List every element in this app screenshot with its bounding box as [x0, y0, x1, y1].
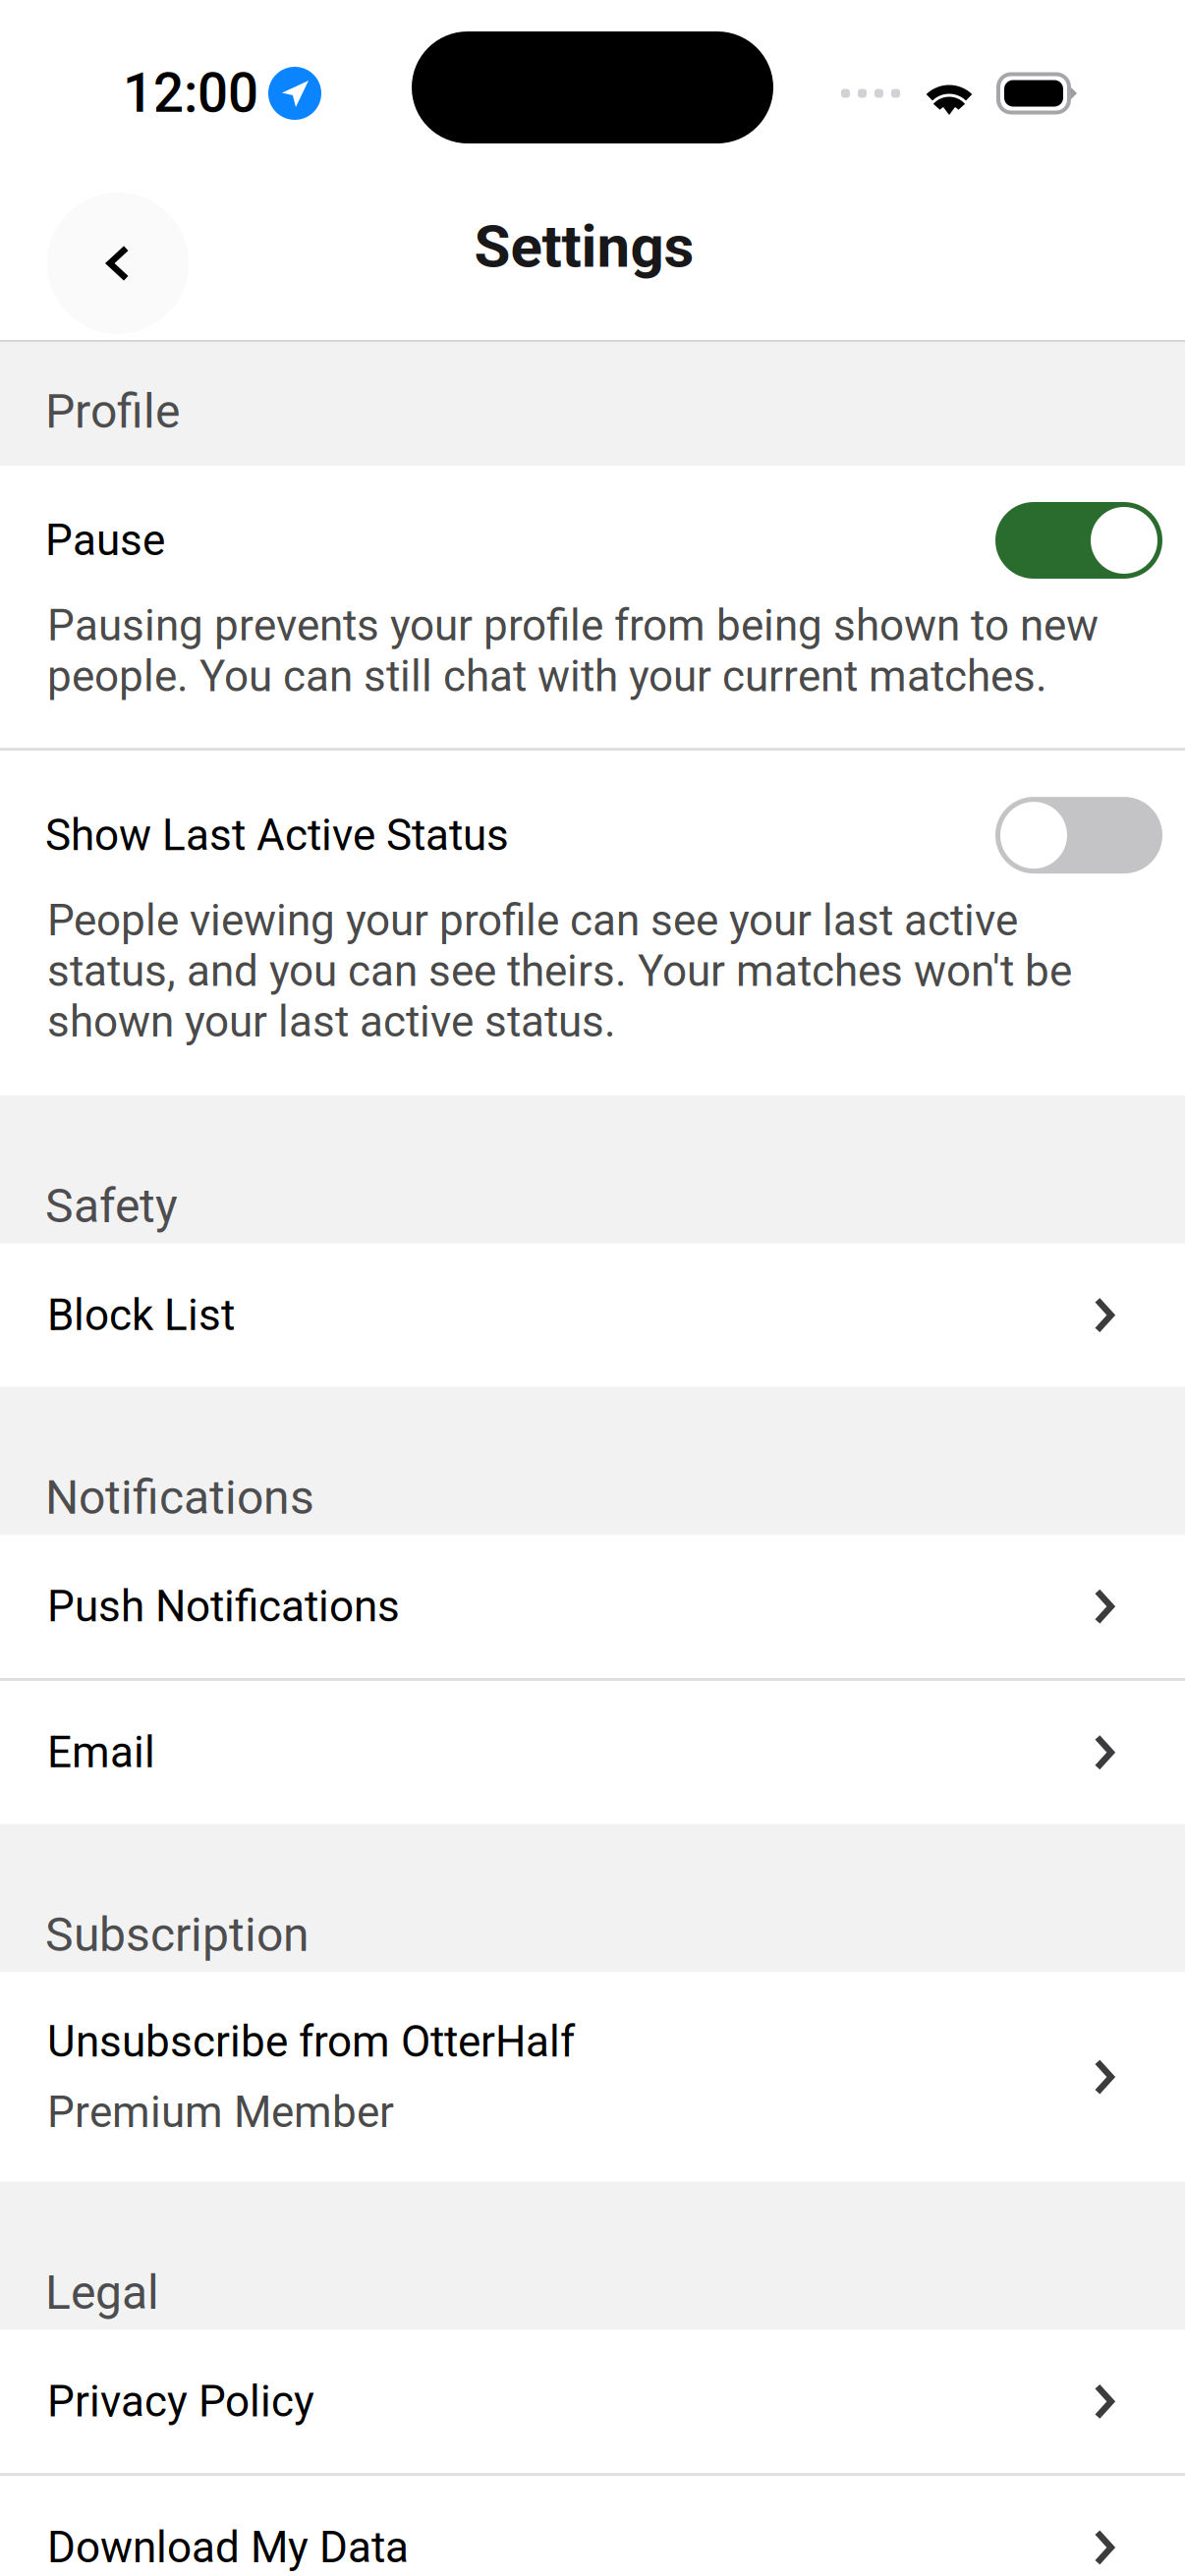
button[interactable]: Email	[0, 1681, 1185, 1824]
button[interactable]: Push Notifications	[0, 1535, 1185, 1678]
staticText: Privacy Policy	[47, 2376, 314, 2427]
button[interactable]: Show Last Active Status	[0, 751, 1185, 1095]
button[interactable]: Back	[47, 193, 189, 334]
staticText: Unsubscribe from OtterHalf	[47, 2016, 575, 2067]
staticText: Pause	[45, 515, 165, 566]
staticText: Show Last Active Status	[45, 810, 509, 861]
staticText: People viewing your profile can see your…	[47, 895, 1072, 1047]
staticText: Block List	[47, 1290, 235, 1340]
staticText: Legal	[45, 2265, 159, 2320]
staticText: Push Notifications	[47, 1581, 400, 1632]
staticText: Notifications	[45, 1470, 314, 1525]
button[interactable]: Privacy Policy	[0, 2330, 1185, 2473]
staticText: Subscription	[45, 1907, 310, 1962]
staticText: Safety	[45, 1179, 178, 1234]
staticText: Download My Data	[47, 2522, 409, 2573]
staticText: 12:00	[123, 62, 258, 125]
button[interactable]: Download My Data	[0, 2476, 1185, 2576]
staticText: Pausing prevents your profile from being…	[47, 600, 1099, 702]
button[interactable]: Block List	[0, 1244, 1185, 1387]
staticText: Settings	[474, 212, 694, 281]
button[interactable]: Pause	[0, 466, 1185, 748]
staticText: Premium Member	[47, 2087, 394, 2138]
staticText: Email	[47, 1727, 155, 1778]
button[interactable]: Unsubscribe from OtterHalf	[0, 1972, 1185, 2182]
staticText: Profile	[45, 384, 180, 439]
